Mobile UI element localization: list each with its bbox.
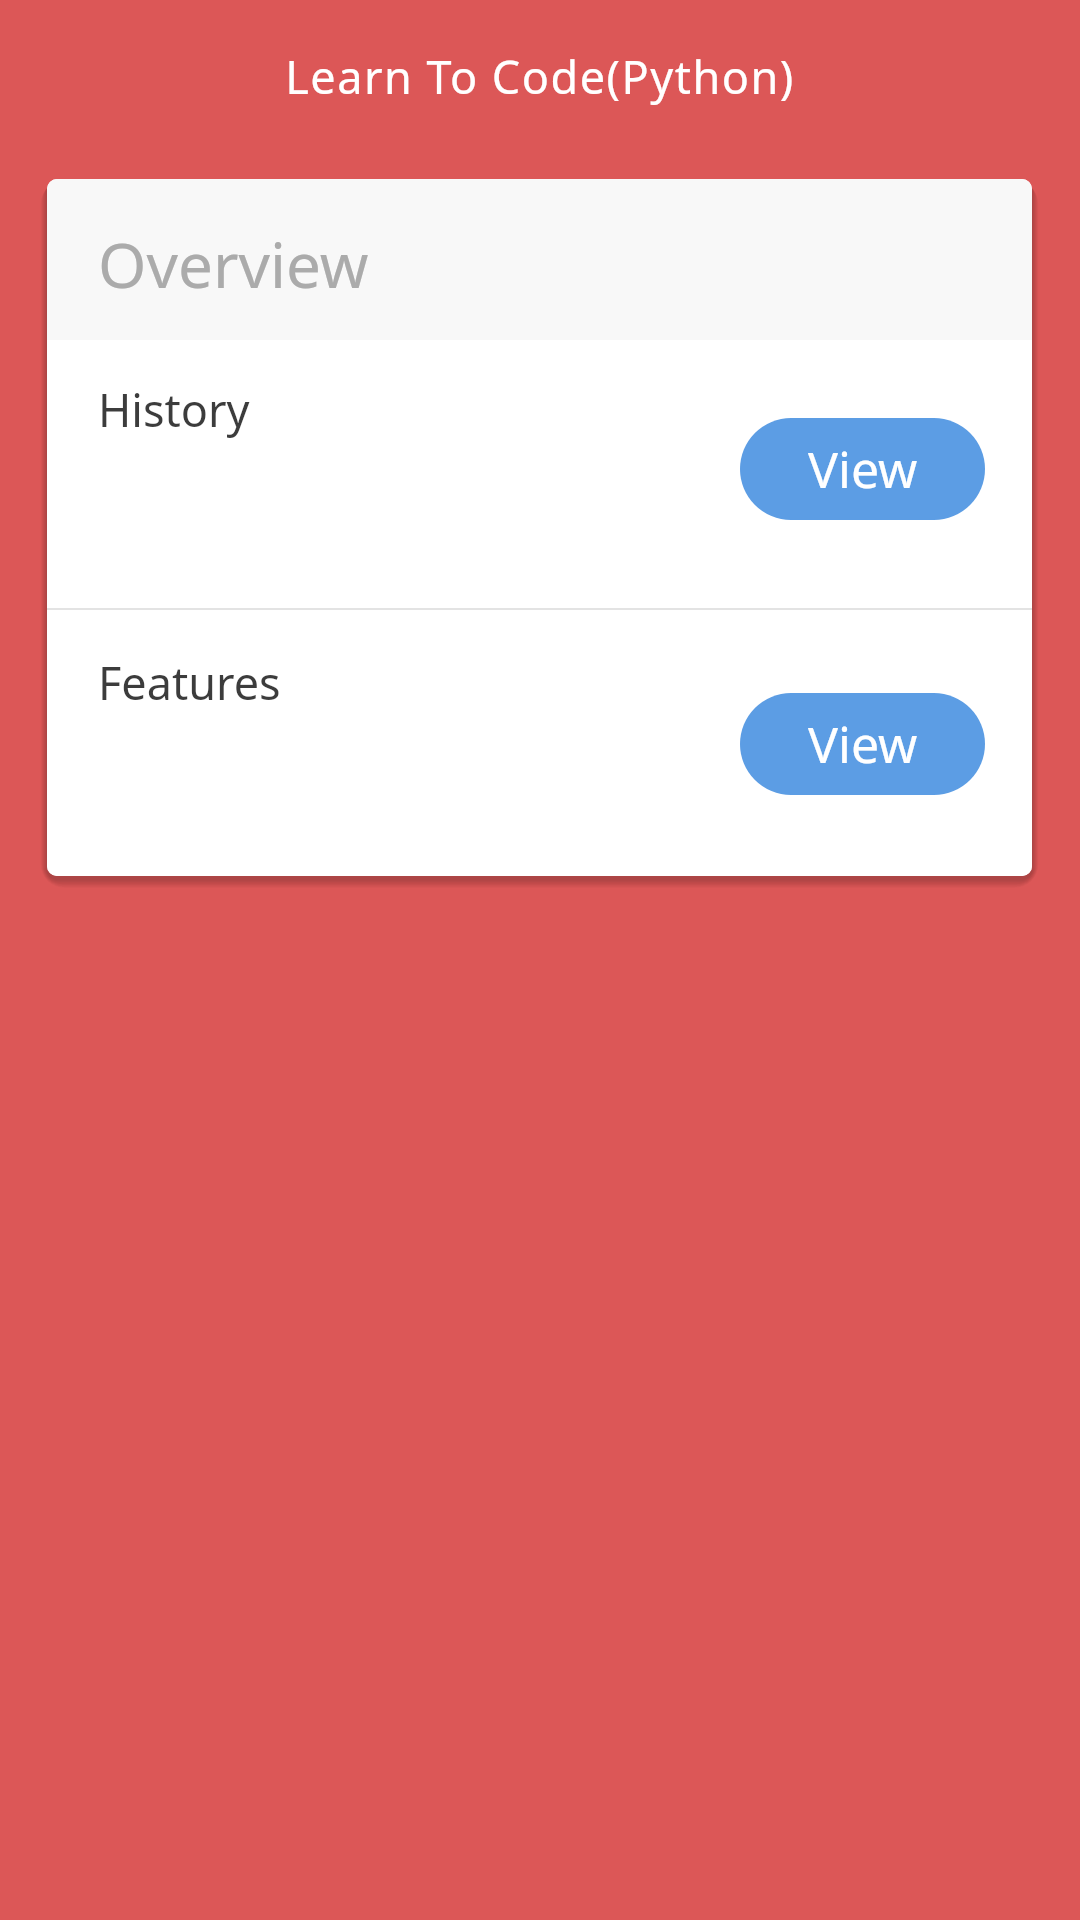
button[interactable]: View — [740, 418, 985, 520]
staticText: View — [808, 435, 918, 503]
button[interactable]: View — [740, 693, 985, 795]
staticText: History — [98, 379, 250, 440]
staticText: Features — [98, 652, 281, 713]
staticText: Overview — [98, 222, 369, 306]
staticText: View — [808, 710, 918, 778]
staticText: Learn To Code(Python) — [0, 46, 1080, 107]
